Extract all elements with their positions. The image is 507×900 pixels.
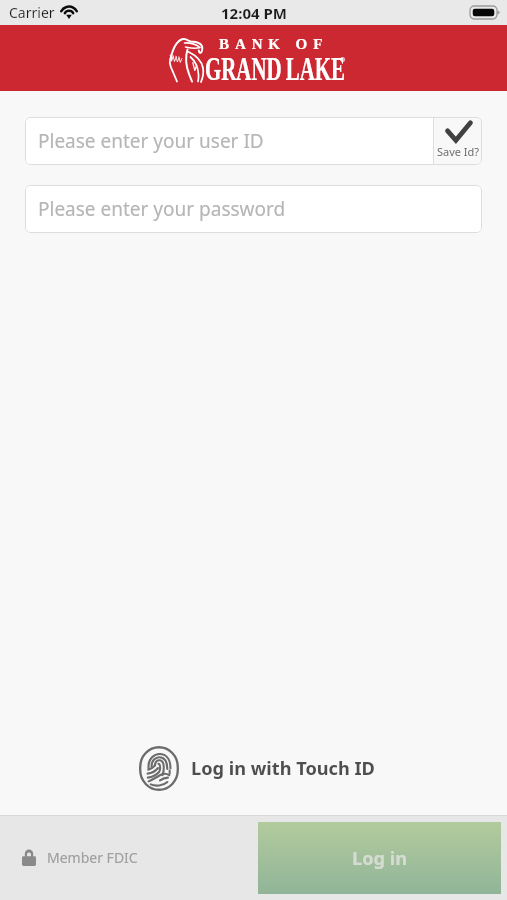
staticText: BANK OF: [219, 36, 329, 53]
staticText: GRAND LAKE: [205, 51, 345, 88]
staticText: Member FDIC: [47, 848, 138, 867]
staticText: Save Id?: [437, 144, 480, 159]
staticText: Please enter your password: [38, 196, 286, 222]
staticText: Please enter your user ID: [38, 128, 264, 154]
staticText: 12:04 PM: [221, 3, 287, 23]
staticText: ®: [340, 56, 346, 64]
button[interactable]: Please enter your user ID: [25, 117, 433, 165]
staticText: Log in: [352, 846, 408, 871]
staticText: Log in with Touch ID: [191, 756, 375, 781]
button[interactable]: Save Id: [434, 117, 482, 165]
button[interactable]: Member FDIC: [22, 815, 258, 900]
button[interactable]: Please enter your password: [25, 185, 482, 233]
button[interactable]: Log in: [258, 822, 501, 894]
button[interactable]: Log in with Touch ID: [3, 746, 507, 791]
staticText: Carrier: [9, 3, 55, 22]
